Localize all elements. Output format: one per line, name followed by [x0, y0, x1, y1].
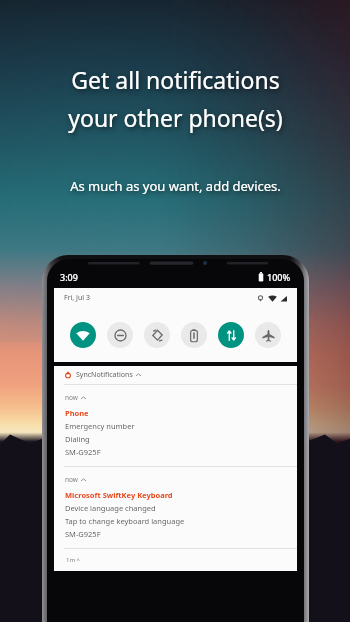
staticText: now — [65, 393, 78, 402]
button[interactable]: Auto-rotate — [144, 322, 170, 348]
staticText: SyncNotifications — [76, 370, 133, 380]
staticText: Get all notifications — [71, 64, 280, 95]
button[interactable]: Do not disturb — [107, 322, 133, 348]
button[interactable]: Mobile data — [218, 322, 244, 348]
button[interactable]: Wi-Fi — [70, 322, 96, 348]
button[interactable]: Airplane mode — [255, 322, 281, 348]
staticText: Microsoft SwiftKey Keyboard — [65, 490, 173, 500]
staticText: As much as you want, add devices. — [70, 177, 281, 195]
staticText: 100% — [267, 271, 291, 283]
staticText: Fri, Jul 3 — [64, 293, 90, 303]
staticText: Phone — [65, 408, 89, 418]
button[interactable]: now — [54, 467, 297, 548]
staticText: your other phone(s) — [68, 102, 283, 133]
staticText: Dialing — [65, 434, 90, 444]
staticText: 3:09 — [60, 271, 78, 283]
staticText: Device language changed — [65, 503, 156, 513]
button[interactable]: now — [54, 385, 297, 466]
staticText: 1m ^ — [66, 556, 81, 564]
staticText: SM-G925F — [65, 447, 101, 457]
staticText: Tap to change keyboard language — [65, 516, 185, 526]
button[interactable]: Battery saver — [181, 322, 207, 348]
button[interactable]: SyncNotifications — [64, 366, 297, 384]
staticText: now — [65, 475, 78, 484]
staticText: SM-G925F — [65, 529, 101, 539]
staticText: Emergency number — [65, 421, 135, 431]
